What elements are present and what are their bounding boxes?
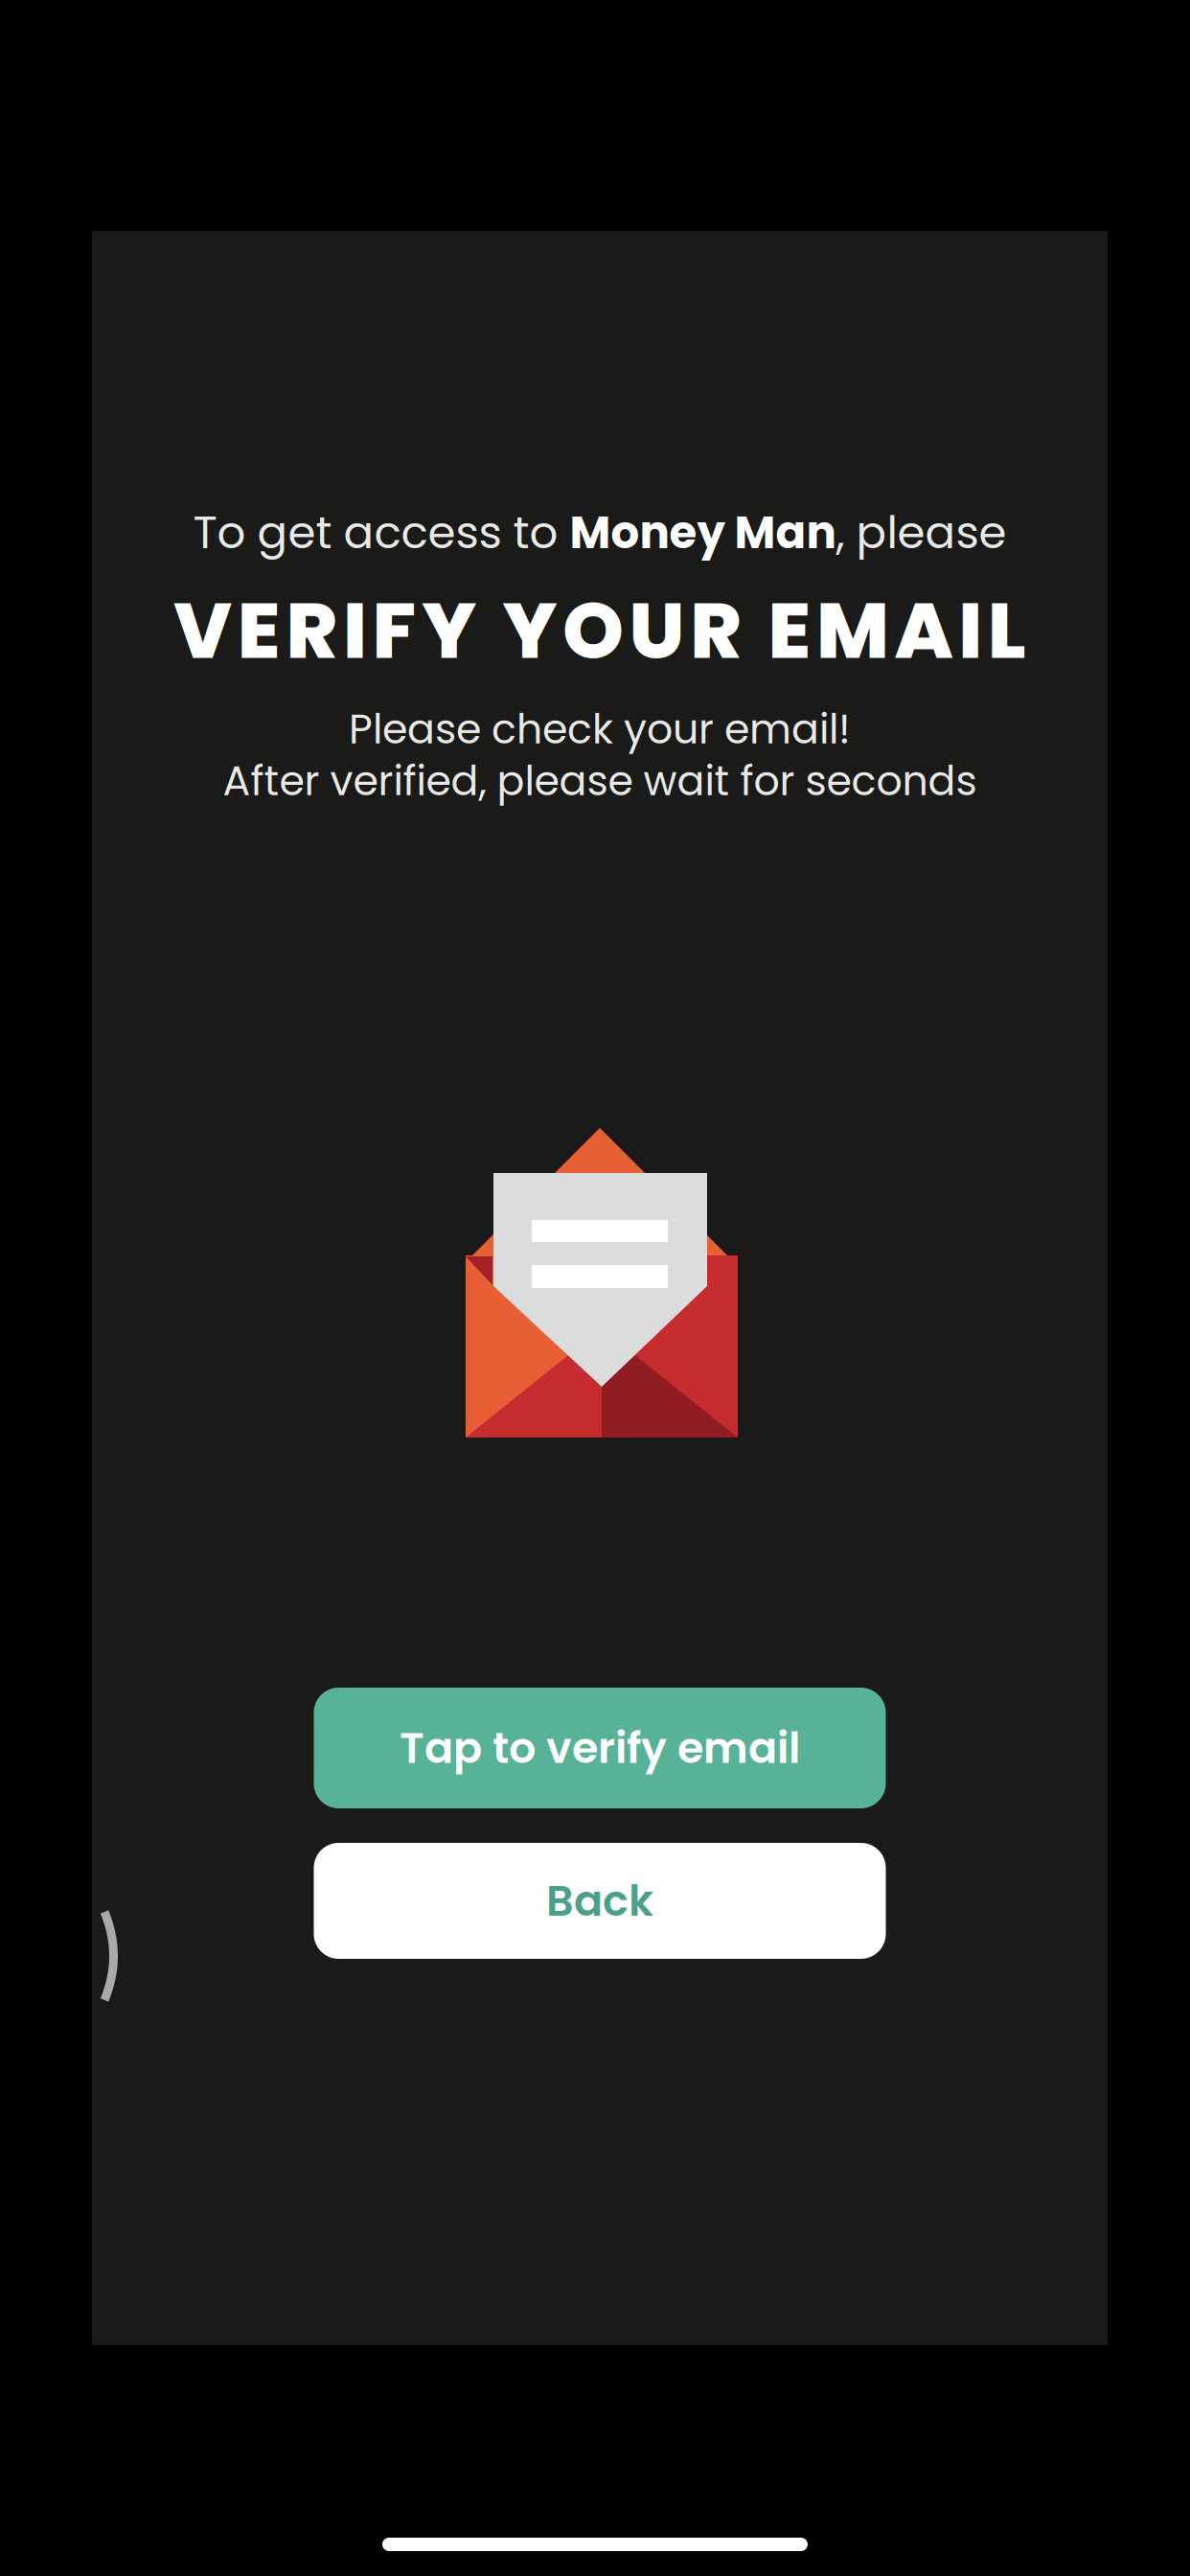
staticText: Tap to verify email bbox=[400, 1718, 800, 1778]
button[interactable]: Tap to verify email bbox=[314, 1688, 886, 1808]
button[interactable]: Back bbox=[314, 1843, 886, 1959]
staticText: , please bbox=[836, 501, 1007, 564]
staticText: Money Man bbox=[570, 501, 836, 564]
staticText: VERIFY YOUR EMAIL bbox=[174, 576, 1026, 685]
staticText: Please check your email! bbox=[349, 701, 851, 758]
staticText: After verified, please wait for seconds bbox=[223, 752, 977, 810]
staticText: To get access to bbox=[193, 501, 570, 564]
staticText: Back bbox=[546, 1871, 653, 1931]
